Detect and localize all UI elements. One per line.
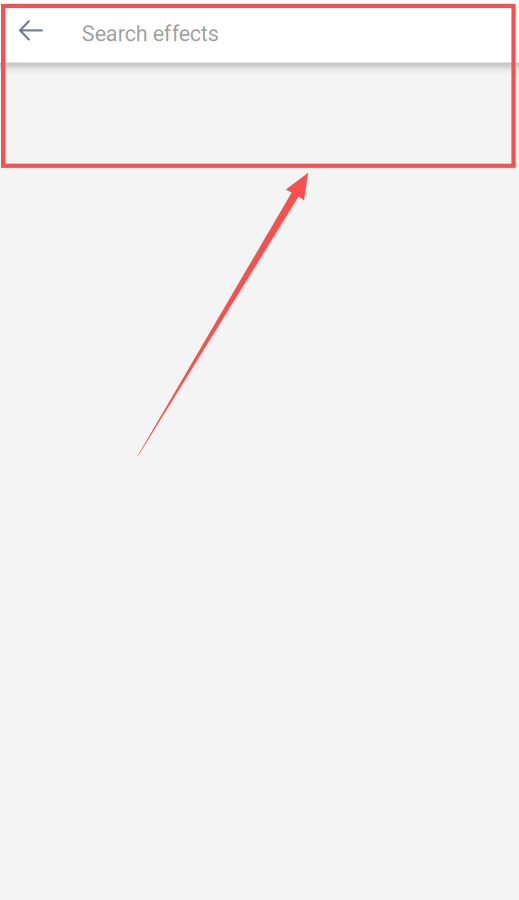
button[interactable]: Search effects — [55, 0, 519, 62]
staticText: Search effects — [82, 21, 219, 46]
button[interactable]: Back — [7, 7, 55, 55]
